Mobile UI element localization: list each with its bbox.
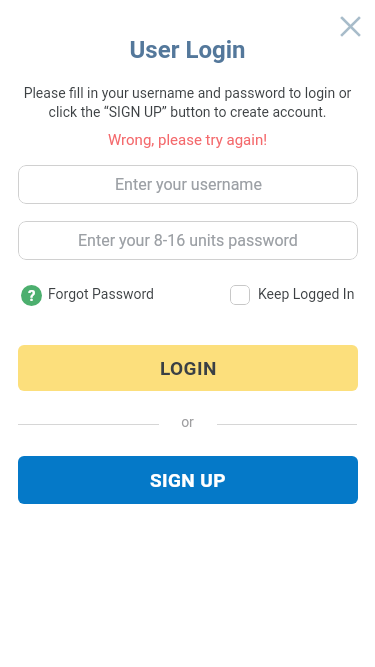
staticText: Wrong, please try again! — [0, 131, 375, 149]
staticText: Please fill in your username and passwor… — [0, 85, 375, 120]
button[interactable] — [334, 10, 366, 42]
staticText: or — [0, 414, 375, 430]
staticText: User Login — [0, 36, 375, 64]
button[interactable]: Enter your 8-16 units password — [18, 221, 358, 260]
button[interactable]: LOGIN — [18, 345, 358, 391]
staticText: Keep Logged In — [258, 286, 355, 302]
button[interactable]: Enter your username — [18, 165, 358, 204]
staticText: ? — [28, 287, 36, 305]
staticText: LOGIN — [160, 357, 217, 379]
button[interactable]: SIGN UP — [18, 456, 358, 504]
staticText: Enter your username — [115, 175, 262, 194]
button[interactable]: ? — [18, 280, 158, 309]
staticText: Enter your 8-16 units password — [78, 231, 298, 250]
button[interactable]: Keep Logged In — [228, 280, 357, 309]
staticText: Forgot Password — [48, 286, 154, 302]
staticText: SIGN UP — [150, 469, 226, 491]
